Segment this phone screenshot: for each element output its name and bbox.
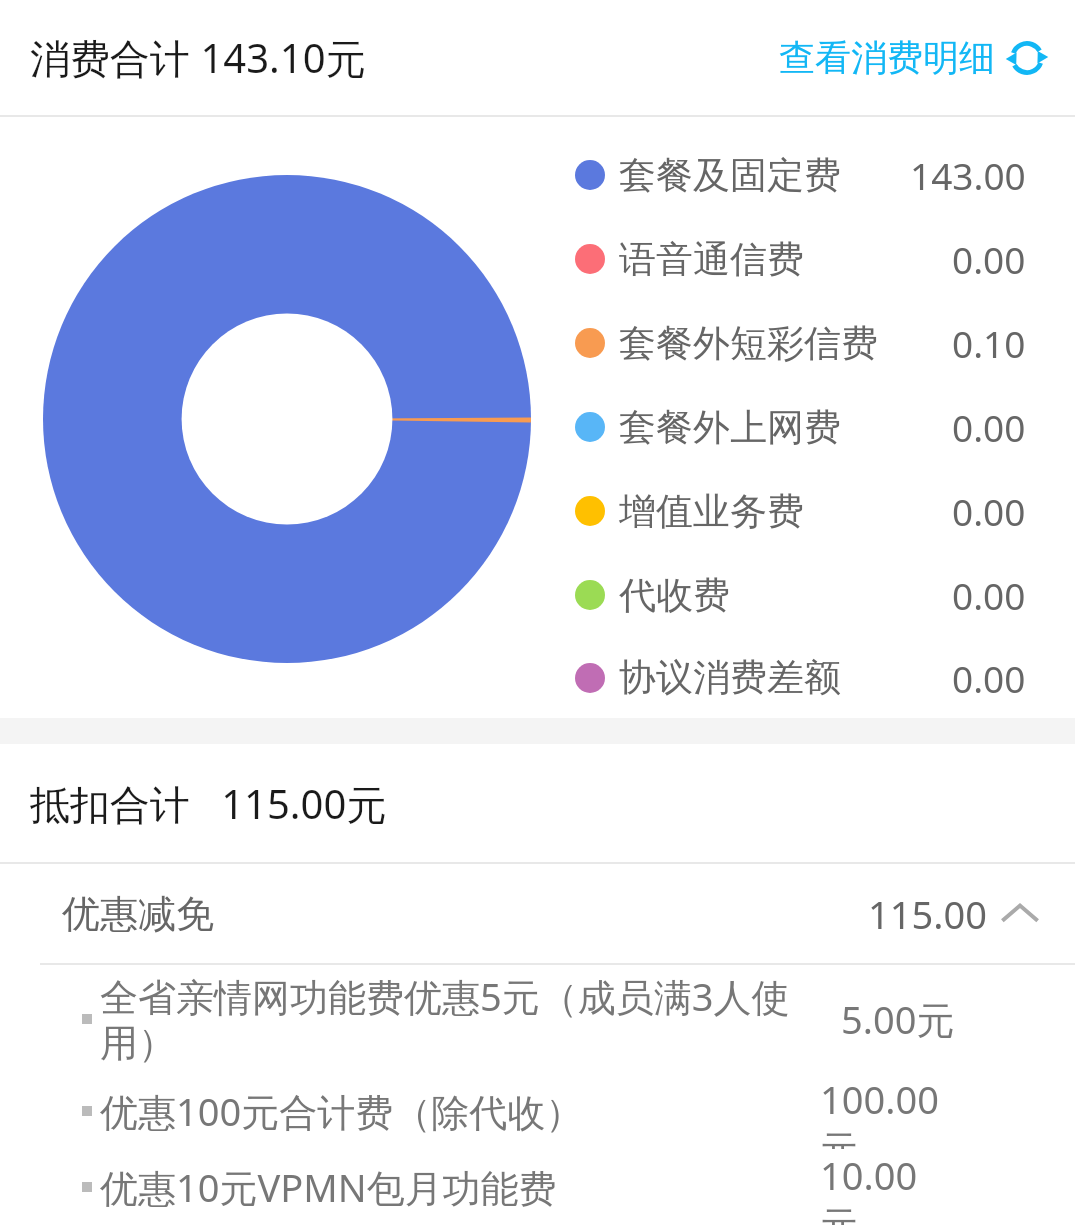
staticText: 143.00 [910,150,1026,200]
staticText: 增值业务费 [619,488,804,535]
staticText: 0.00 [952,486,1026,536]
button[interactable]: 语音通信费 [560,217,1060,301]
button[interactable]: 优惠100元合计费（除代收） [0,1073,1075,1149]
staticText: 115.00 [868,888,987,940]
staticText: 语音通信费 [619,236,804,283]
staticText: 套餐及固定费 [619,152,841,199]
button[interactable]: 代收费 [560,553,1060,637]
staticText: 优惠减免 [62,890,214,938]
button[interactable]: 协议消费差额 [560,637,1060,718]
button[interactable]: 查看消费明细 [759,21,1075,94]
staticText: 0.00 [952,653,1026,703]
staticText: 5.00元 [841,993,955,1045]
staticText: 10.00元 [820,1149,955,1225]
staticText: 代收费 [619,572,730,619]
staticText: 抵扣合计 115.00元 [30,776,387,831]
button[interactable]: 增值业务费 [560,469,1060,553]
other: 收起 [999,893,1041,935]
staticText: 全省亲情网功能费优惠5元（成员满3人使用） [100,970,820,1068]
button[interactable]: 全省亲情网功能费优惠5元（成员满3人使用） [0,965,1075,1073]
staticText: 0.00 [952,570,1026,620]
staticText: 优惠10元VPMN包月功能费 [100,1161,820,1213]
button[interactable]: 套餐及固定费 [560,133,1060,217]
button[interactable]: 优惠10元VPMN包月功能费 [0,1149,1075,1225]
staticText: 100.00元 [820,1073,955,1149]
button[interactable]: 优惠减免 [0,864,1075,963]
staticText: 0.00 [952,234,1026,284]
staticText: 0.10 [952,318,1026,368]
staticText: 查看消费明细 [779,35,995,80]
button[interactable]: 套餐外上网费 [560,385,1060,469]
staticText: 协议消费差额 [619,654,841,701]
button[interactable]: 套餐外短彩信费 [560,301,1060,385]
staticText: 套餐外短彩信费 [619,320,878,367]
other: 刷新 [1005,36,1049,80]
staticText: 优惠100元合计费（除代收） [100,1085,820,1137]
staticText: 套餐外上网费 [619,404,841,451]
staticText: 消费合计 143.10元 [30,30,366,85]
staticText: 0.00 [952,402,1026,452]
